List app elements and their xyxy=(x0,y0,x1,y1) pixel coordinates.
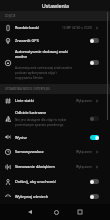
button[interactable]: Back xyxy=(22,204,38,220)
button[interactable]: Wycisz xyxy=(0,130,110,144)
staticText: Samowyzwalacz xyxy=(15,149,44,154)
button[interactable]: Linie siatki xyxy=(0,94,110,107)
button[interactable]: Samowyzwalacz xyxy=(0,144,110,159)
button[interactable]: Rozdzielczość xyxy=(0,21,110,34)
button[interactable]: Recent apps xyxy=(72,204,88,220)
button[interactable]: Sterowanie dźwiękiem xyxy=(0,159,110,174)
staticText: Wycisz xyxy=(15,135,27,140)
button[interactable]: Odbicie lustrzane xyxy=(0,107,110,130)
staticText: Dotknij, aby uruchomić xyxy=(15,179,57,184)
staticText: Rozdzielczość xyxy=(15,25,40,30)
staticText: Automatycznie umieszczaj znaki wodne pod… xyxy=(15,66,73,80)
button[interactable]: Znacznik GPS xyxy=(0,34,110,47)
staticText: Znacznik GPS xyxy=(15,38,39,43)
staticText: Automatycznie dodawaj znaki wodne xyxy=(15,49,73,59)
button[interactable]: Toggle off xyxy=(90,37,99,44)
staticText: Nie jest dostępne dla zdjęć w trybie por… xyxy=(15,118,73,127)
button[interactable]: Dotknij, aby uruchomić xyxy=(0,174,110,189)
button[interactable]: Toggle off xyxy=(90,193,99,200)
staticText: Sterowanie dźwiękiem xyxy=(15,164,55,169)
button[interactable]: Toggle on xyxy=(90,134,99,141)
staticText: Wyłączone xyxy=(76,150,92,154)
staticText: Ustawienia xyxy=(42,2,69,9)
staticText: Odbicie lustrzane xyxy=(15,110,47,115)
button[interactable]: Toggle off xyxy=(90,59,99,66)
staticText: 13 MP (4160 x 3120) xyxy=(62,26,92,30)
button[interactable]: Home xyxy=(48,204,64,220)
staticText: Linie siatki xyxy=(15,98,34,103)
button[interactable]: Toggle off xyxy=(90,115,99,122)
button[interactable]: Toggle off xyxy=(90,178,99,185)
staticText: ZDJĘCIE xyxy=(5,14,16,18)
staticText: Wykrywaj uśmiech xyxy=(15,194,49,199)
button[interactable]: Wykrywaj uśmiech xyxy=(0,189,110,204)
staticText: USTAWIENIA WIDEO I INTERFEJSU xyxy=(5,87,51,91)
staticText: Wyłączone xyxy=(76,165,92,169)
staticText: Wyłączone xyxy=(76,99,92,103)
button[interactable]: Automatycznie dodawaj znaki wodne xyxy=(0,47,110,84)
